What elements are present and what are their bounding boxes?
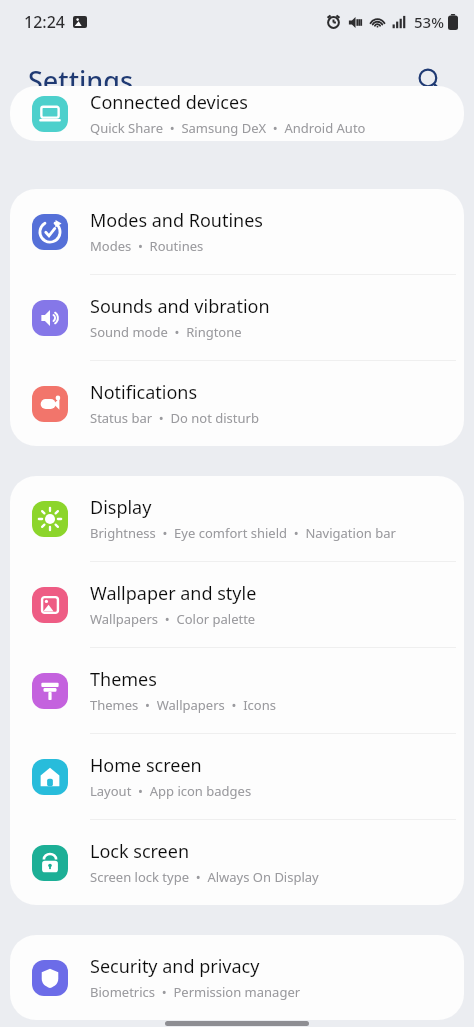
button[interactable]: Security and privacy: [10, 935, 464, 1020]
other: Display: [32, 501, 68, 537]
staticText: Status bar • Do not disturb: [90, 409, 259, 427]
button[interactable]: Wallpaper and style: [10, 562, 464, 648]
other: Sounds and vibration: [32, 300, 68, 336]
button[interactable]: Themes: [10, 648, 464, 734]
staticText: Biometrics • Permission manager: [90, 983, 301, 1001]
other: Wallpaper and style: [32, 587, 68, 623]
staticText: Modes • Routines: [90, 237, 204, 255]
other: Themes: [32, 673, 68, 709]
staticText: Home screen: [90, 753, 202, 778]
other: Notifications: [32, 386, 68, 422]
other: Connected devices: [32, 96, 68, 132]
staticText: Brightness • Eye comfort shield • Naviga…: [90, 524, 396, 542]
button[interactable]: Notifications: [10, 361, 464, 446]
staticText: Sound mode • Ringtone: [90, 323, 242, 341]
staticText: Connected devices: [90, 90, 248, 115]
other: Home screen: [32, 759, 68, 795]
button[interactable]: Connected devices: [10, 86, 464, 141]
staticText: Wallpaper and style: [90, 581, 257, 606]
staticText: Modes and Routines: [90, 208, 263, 233]
button[interactable]: Search: [408, 58, 452, 102]
staticText: 53%: [414, 12, 444, 32]
button[interactable]: Modes and Routines: [10, 189, 464, 275]
other: Security and privacy: [32, 960, 68, 996]
button[interactable]: Lock screen: [10, 820, 464, 905]
staticText: Security and privacy: [90, 954, 260, 979]
staticText: 12:24: [24, 11, 65, 33]
other: Lock screen: [32, 845, 68, 881]
button[interactable]: Home screen: [10, 734, 464, 820]
staticText: Sounds and vibration: [90, 294, 270, 319]
staticText: Display: [90, 495, 152, 520]
button[interactable]: Sounds and vibration: [10, 275, 464, 361]
staticText: Layout • App icon badges: [90, 782, 252, 800]
staticText: Screen lock type • Always On Display: [90, 868, 319, 886]
button[interactable]: Display: [10, 476, 464, 562]
staticText: Themes: [90, 667, 157, 692]
staticText: Settings: [28, 62, 134, 99]
staticText: Quick Share • Samsung DeX • Android Auto: [90, 119, 366, 137]
staticText: Wallpapers • Color palette: [90, 610, 256, 628]
staticText: Lock screen: [90, 839, 190, 864]
staticText: Themes • Wallpapers • Icons: [90, 696, 276, 714]
other: Modes and Routines: [32, 214, 68, 250]
staticText: Notifications: [90, 380, 198, 405]
